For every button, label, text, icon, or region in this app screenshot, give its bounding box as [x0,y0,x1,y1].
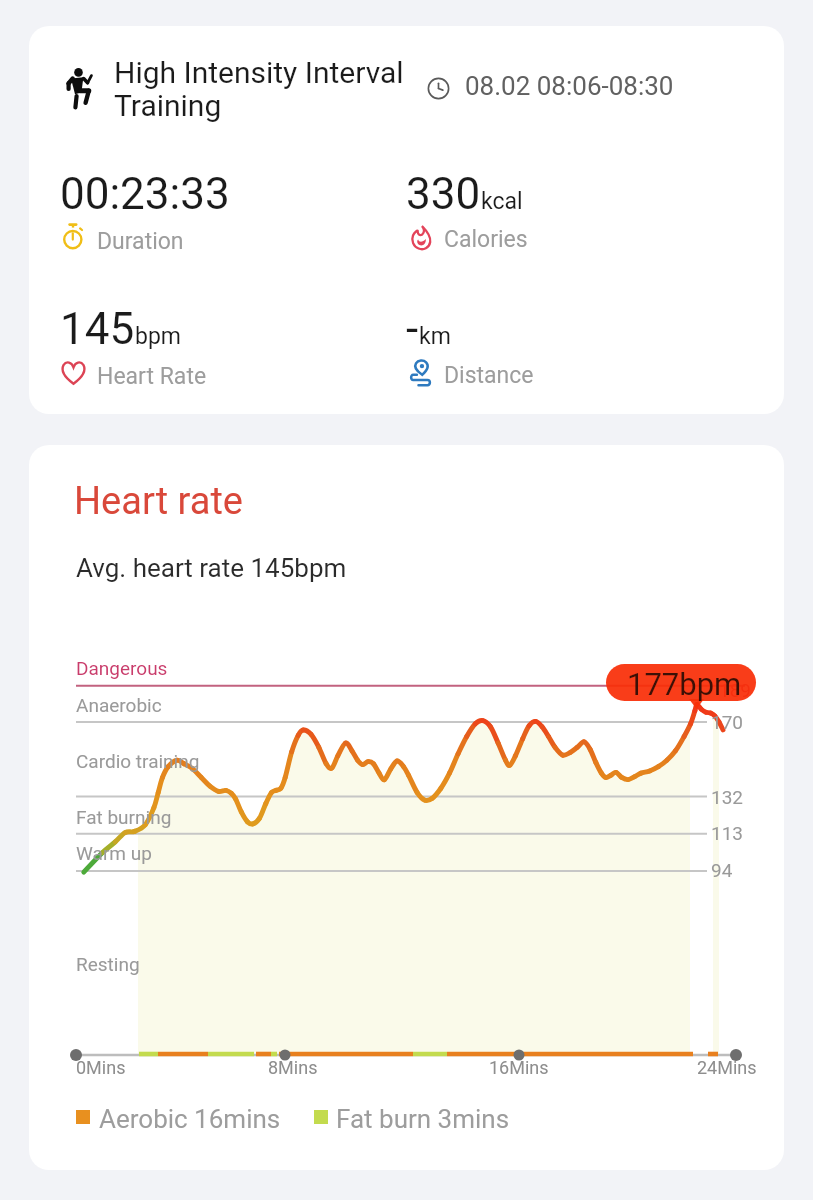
staticText: Fat burn 3mins [336,1104,510,1134]
staticText: 113 [711,822,744,844]
staticText: bpm [135,323,181,350]
staticText: km [419,323,451,350]
staticText: Heart Rate [97,363,207,390]
staticText: 16Mins [489,1057,549,1078]
staticText: Calories [444,226,528,253]
staticText: 132 [711,786,744,808]
staticText: High Intensity Interval Training [114,55,404,123]
staticText: Dangerous [76,657,168,679]
staticText: Duration [97,228,184,255]
staticText: Avg. heart rate 145bpm [76,553,347,583]
staticText: 330 [406,168,481,220]
staticText: Anaerobic [76,694,162,716]
staticText: Distance [444,362,534,389]
staticText: 8Mins [268,1057,318,1078]
staticText: Heart rate [74,479,243,524]
staticText: 0Mins [76,1057,126,1078]
staticText: kcal [481,188,523,215]
staticText: 177bpm [627,666,742,702]
staticText: 189 [719,679,752,701]
staticText: - [406,303,419,355]
button[interactable] [29,445,784,1170]
staticText: Cardio training [76,750,200,772]
staticText: 94 [711,859,733,881]
staticText: Aerobic 16mins [99,1104,281,1134]
staticText: 145 [60,303,135,355]
button[interactable] [29,26,784,414]
staticText: Warm up [76,842,152,864]
staticText: Fat burning [76,806,172,828]
staticText: 08.02 08:06-08:30 [465,71,674,101]
staticText: Resting [76,953,140,975]
staticText: 24Mins [697,1057,757,1078]
staticText: 00:23:33 [60,168,230,220]
staticText: 170 [711,711,744,733]
